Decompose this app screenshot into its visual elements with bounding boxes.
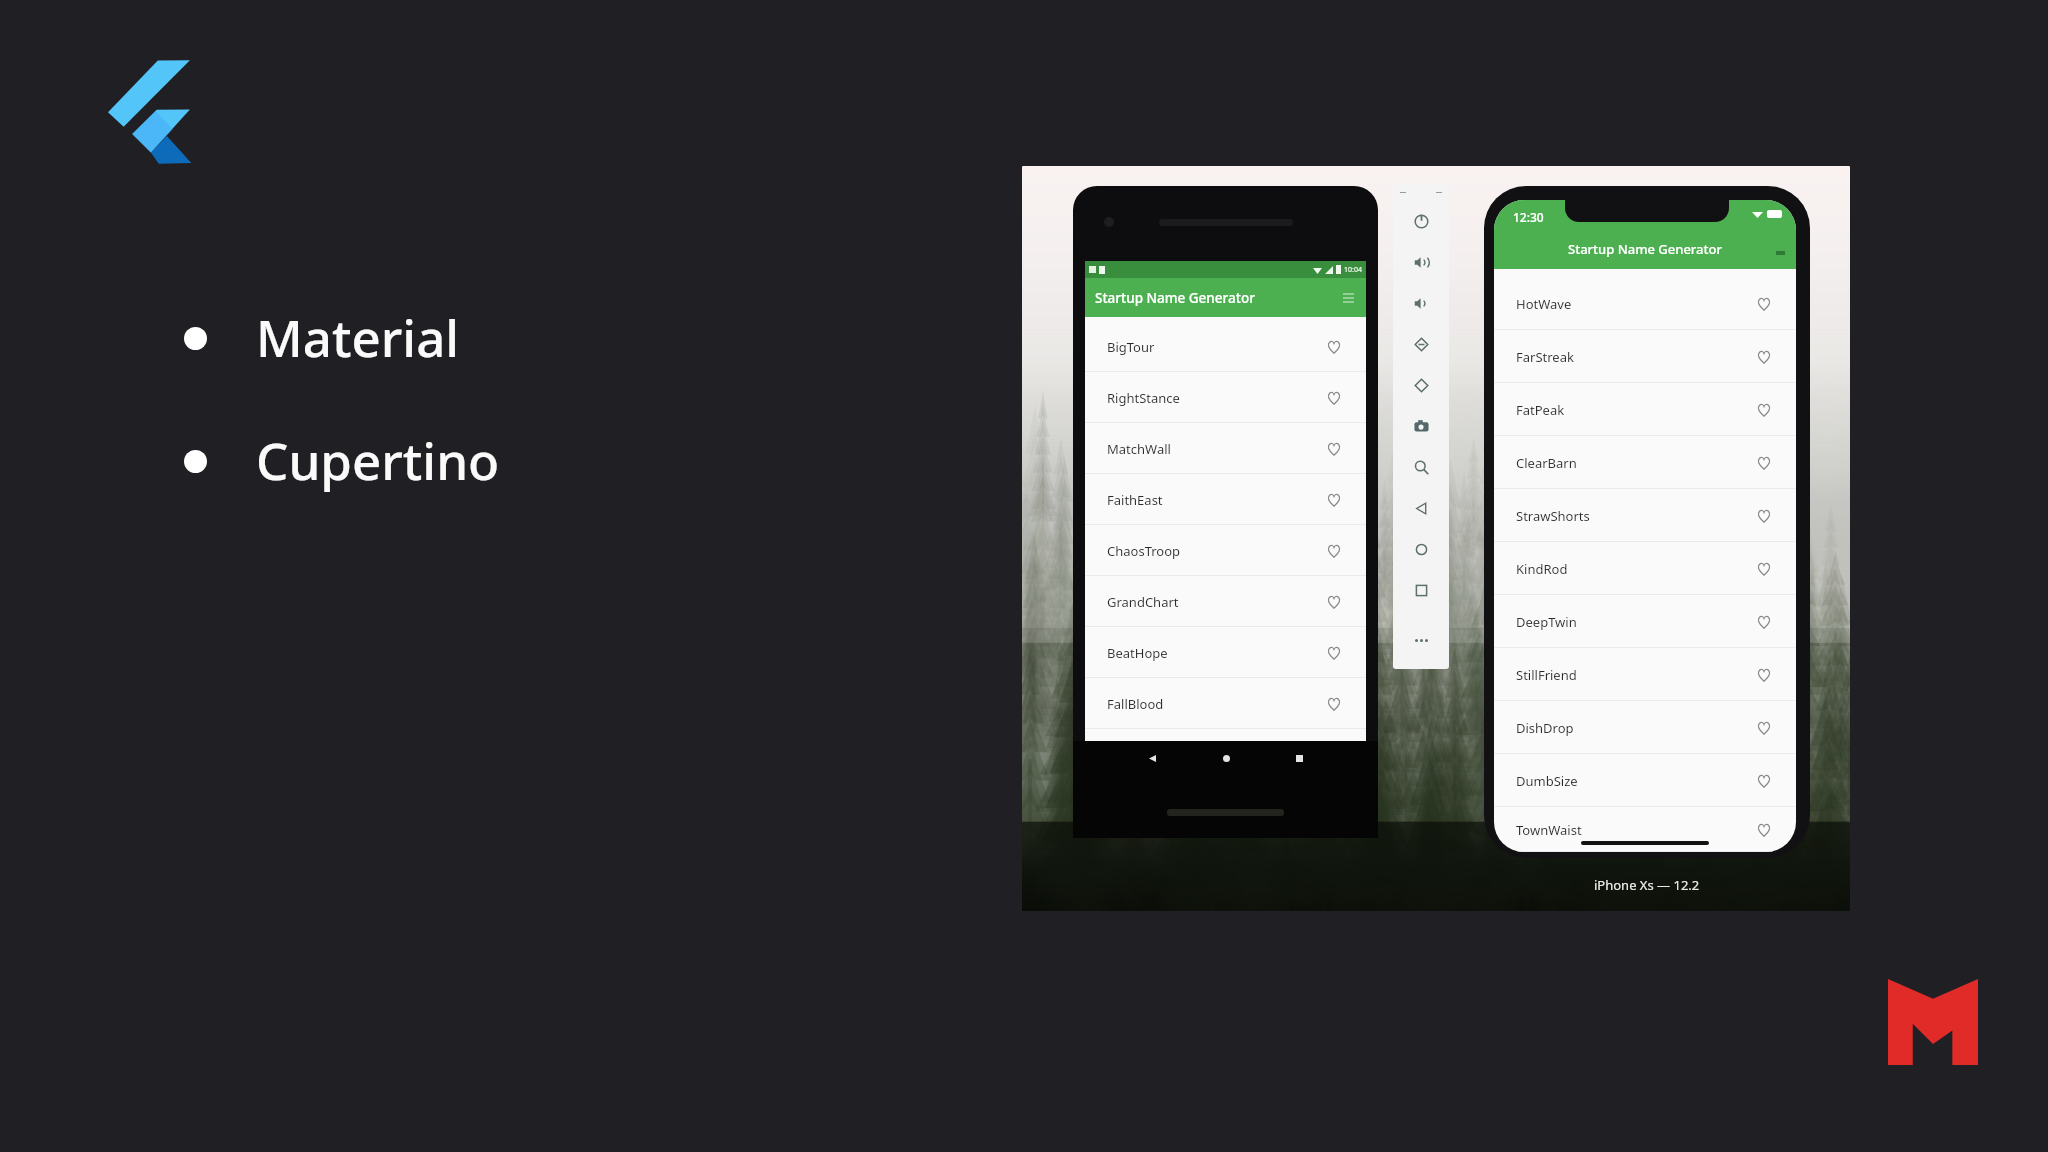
button[interactable]: FallBlood (1085, 678, 1366, 729)
staticText: FallBlood (1107, 695, 1164, 713)
button[interactable]: Rotate left (1401, 324, 1442, 365)
staticText: Cupertino (256, 425, 500, 494)
button[interactable]: Favorite (1325, 389, 1343, 407)
staticText: BeatHope (1107, 644, 1168, 662)
button[interactable]: Recents (1291, 750, 1307, 766)
staticText: 12:30 (1513, 209, 1544, 225)
button[interactable]: Favorite (1325, 593, 1343, 611)
staticText: DishDrop (1516, 719, 1574, 737)
button[interactable]: Back (1144, 750, 1160, 766)
button[interactable]: Favorite (1325, 338, 1343, 356)
button[interactable]: Home (1218, 750, 1234, 766)
button[interactable]: ClearBarn (1494, 436, 1796, 489)
button[interactable]: BeatHope (1085, 627, 1366, 678)
button[interactable]: Favorite (1325, 542, 1343, 560)
button[interactable]: Favorite (1755, 666, 1773, 684)
button[interactable]: DeepTwin (1494, 595, 1796, 648)
staticText: DumbSize (1516, 772, 1578, 790)
staticText: Material (256, 302, 460, 371)
button[interactable]: Favorite (1755, 719, 1773, 737)
button[interactable]: Volume down (1401, 283, 1442, 324)
staticText: GrandChart (1107, 593, 1179, 611)
button[interactable]: Favorite (1755, 401, 1773, 419)
staticText: ClearBarn (1516, 454, 1577, 472)
button[interactable]: Overview (1401, 570, 1442, 611)
button[interactable]: DishDrop (1494, 701, 1796, 754)
staticText: 10:04 (1344, 265, 1362, 275)
button[interactable]: BigTour (1085, 321, 1366, 372)
button[interactable]: Favorite (1325, 491, 1343, 509)
staticText: DeepTwin (1516, 613, 1577, 631)
button[interactable]: DumbSize (1494, 754, 1796, 807)
button[interactable]: FaithEast (1085, 474, 1366, 525)
button[interactable]: StillFriend (1494, 648, 1796, 701)
button[interactable]: Volume up (1401, 242, 1442, 283)
button[interactable]: Favorite (1325, 695, 1343, 713)
button[interactable]: Favorite (1755, 507, 1773, 525)
staticText: TownWaist (1516, 821, 1582, 839)
button[interactable]: FarStreak (1494, 330, 1796, 383)
staticText: FaithEast (1107, 491, 1163, 509)
staticText: StillFriend (1516, 666, 1577, 684)
button[interactable]: Rotate right (1401, 365, 1442, 406)
button[interactable]: Cupertino (184, 425, 500, 494)
button[interactable]: Material (184, 302, 460, 371)
button[interactable]: HotWave (1494, 277, 1796, 330)
staticText: Startup Name Generator (1095, 289, 1255, 307)
button[interactable]: GrandChart (1085, 576, 1366, 627)
button[interactable]: Favorite (1755, 295, 1773, 313)
staticText: Startup Name Generator (1568, 240, 1722, 258)
staticText: iPhone Xs — 12.2 (1594, 876, 1700, 894)
staticText: KindRod (1516, 560, 1568, 578)
button[interactable]: Favorite (1755, 821, 1773, 839)
staticText: StrawShorts (1516, 507, 1590, 525)
button[interactable]: StrawShorts (1494, 489, 1796, 542)
staticText: HotWave (1516, 295, 1572, 313)
button[interactable]: Favorite (1755, 613, 1773, 631)
button[interactable]: Home (1401, 529, 1442, 570)
button[interactable]: Favorite (1325, 644, 1343, 662)
button[interactable]: TownWaist (1494, 807, 1796, 852)
button[interactable]: RightStance (1085, 372, 1366, 423)
button[interactable]: Favorite (1325, 440, 1343, 458)
button[interactable]: Screenshot (1401, 406, 1442, 447)
button[interactable]: Power (1401, 201, 1442, 242)
button[interactable]: Favorite (1755, 772, 1773, 790)
staticText: BigTour (1107, 338, 1155, 356)
staticText: ChaosTroop (1107, 542, 1181, 560)
button[interactable]: FatPeak (1494, 383, 1796, 436)
button[interactable]: ChaosTroop (1085, 525, 1366, 576)
button[interactable]: Favorite (1755, 560, 1773, 578)
staticText: FatPeak (1516, 401, 1565, 419)
button[interactable]: Favorite (1755, 348, 1773, 366)
button[interactable]: More (1404, 623, 1438, 657)
button[interactable]: Favorite (1755, 454, 1773, 472)
button[interactable]: MatchWall (1085, 423, 1366, 474)
button[interactable]: KindRod (1494, 542, 1796, 595)
staticText: RightStance (1107, 389, 1180, 407)
button[interactable]: Zoom (1401, 447, 1442, 488)
staticText: FarStreak (1516, 348, 1574, 366)
button[interactable]: Back (1401, 488, 1442, 529)
staticText: MatchWall (1107, 440, 1171, 458)
